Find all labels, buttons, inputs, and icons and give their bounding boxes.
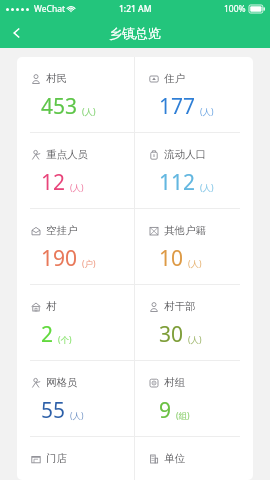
staticText: 100% [224, 3, 246, 15]
staticText: (人) [70, 182, 84, 194]
staticText: 村组 [164, 376, 185, 389]
staticText: 190 [41, 244, 78, 273]
staticText: 112 [159, 168, 196, 197]
staticText: (人) [82, 106, 96, 118]
staticText: (组) [176, 410, 190, 422]
button[interactable]: 单位 [135, 437, 253, 480]
button[interactable]: 网格员 [17, 361, 134, 436]
staticText: (个) [58, 334, 72, 346]
staticText: 12 [41, 168, 66, 197]
staticText: 453 [41, 92, 78, 121]
button[interactable]: 空挂户 [17, 209, 134, 284]
staticText: 村干部 [164, 300, 196, 313]
button[interactable]: 村 [17, 285, 134, 360]
staticText: 10 [159, 244, 184, 273]
staticText: 门店 [46, 452, 67, 465]
staticText: 单位 [164, 452, 185, 465]
button[interactable]: 流动人口 [135, 133, 253, 208]
staticText: 9 [159, 396, 172, 425]
button[interactable]: Back [0, 18, 34, 48]
staticText: 住户 [164, 72, 185, 85]
staticText: WeChat [34, 3, 65, 15]
staticText: 乡镇总览 [109, 25, 161, 41]
staticText: 流动人口 [164, 148, 206, 161]
staticText: 其他户籍 [164, 224, 206, 237]
staticText: (人) [200, 182, 214, 194]
staticText: 30 [159, 320, 184, 349]
button[interactable]: 门店 [17, 437, 134, 480]
staticText: 55 [41, 396, 66, 425]
button[interactable]: 重点人员 [17, 133, 134, 208]
staticText: (人) [200, 106, 214, 118]
staticText: 网格员 [46, 376, 78, 389]
staticText: 村 [46, 300, 57, 313]
button[interactable]: 村组 [135, 361, 253, 436]
staticText: 1:21 AM [119, 3, 152, 15]
staticText: (人) [188, 258, 202, 270]
button[interactable]: 村干部 [135, 285, 253, 360]
staticText: 重点人员 [46, 148, 88, 161]
staticText: 空挂户 [46, 224, 78, 237]
button[interactable]: 村民 [17, 57, 134, 132]
staticText: (户) [82, 258, 96, 270]
button[interactable]: 住户 [135, 57, 253, 132]
staticText: (人) [70, 410, 84, 422]
button[interactable]: 其他户籍 [135, 209, 253, 284]
staticText: 177 [159, 92, 196, 121]
staticText: 2 [41, 320, 54, 349]
staticText: 村民 [46, 72, 67, 85]
staticText: (人) [188, 334, 202, 346]
